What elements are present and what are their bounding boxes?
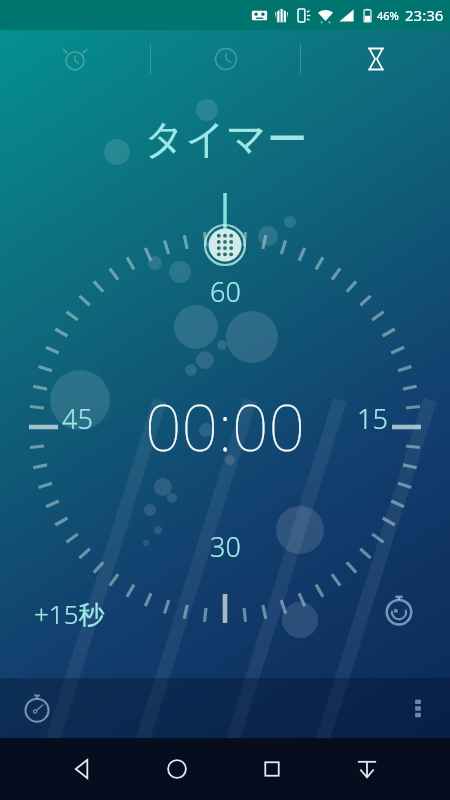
staticText: 00:00 [145,383,305,470]
staticText: 46% [377,8,399,23]
button[interactable]: Clock [151,30,300,88]
staticText: 23:36 [405,5,444,25]
button[interactable]: More options [394,684,442,732]
staticText: 60 [210,273,241,310]
button[interactable]: Timer preset [374,585,424,635]
button[interactable]: Alarm [0,30,150,88]
button[interactable]: Home [130,738,224,800]
button[interactable]: Stopwatch [10,681,64,735]
staticText: 30 [210,528,241,565]
staticText: タイマー [144,114,307,164]
button[interactable]: Back [36,738,130,800]
staticText: 15 [357,400,388,437]
button[interactable]: Hide navigation [319,738,414,800]
staticText: +15秒 [34,596,105,632]
staticText: 45 [62,400,93,437]
button[interactable]: +15秒 [22,588,117,640]
button[interactable]: Timer [301,30,450,88]
button[interactable]: Recents [224,738,319,800]
